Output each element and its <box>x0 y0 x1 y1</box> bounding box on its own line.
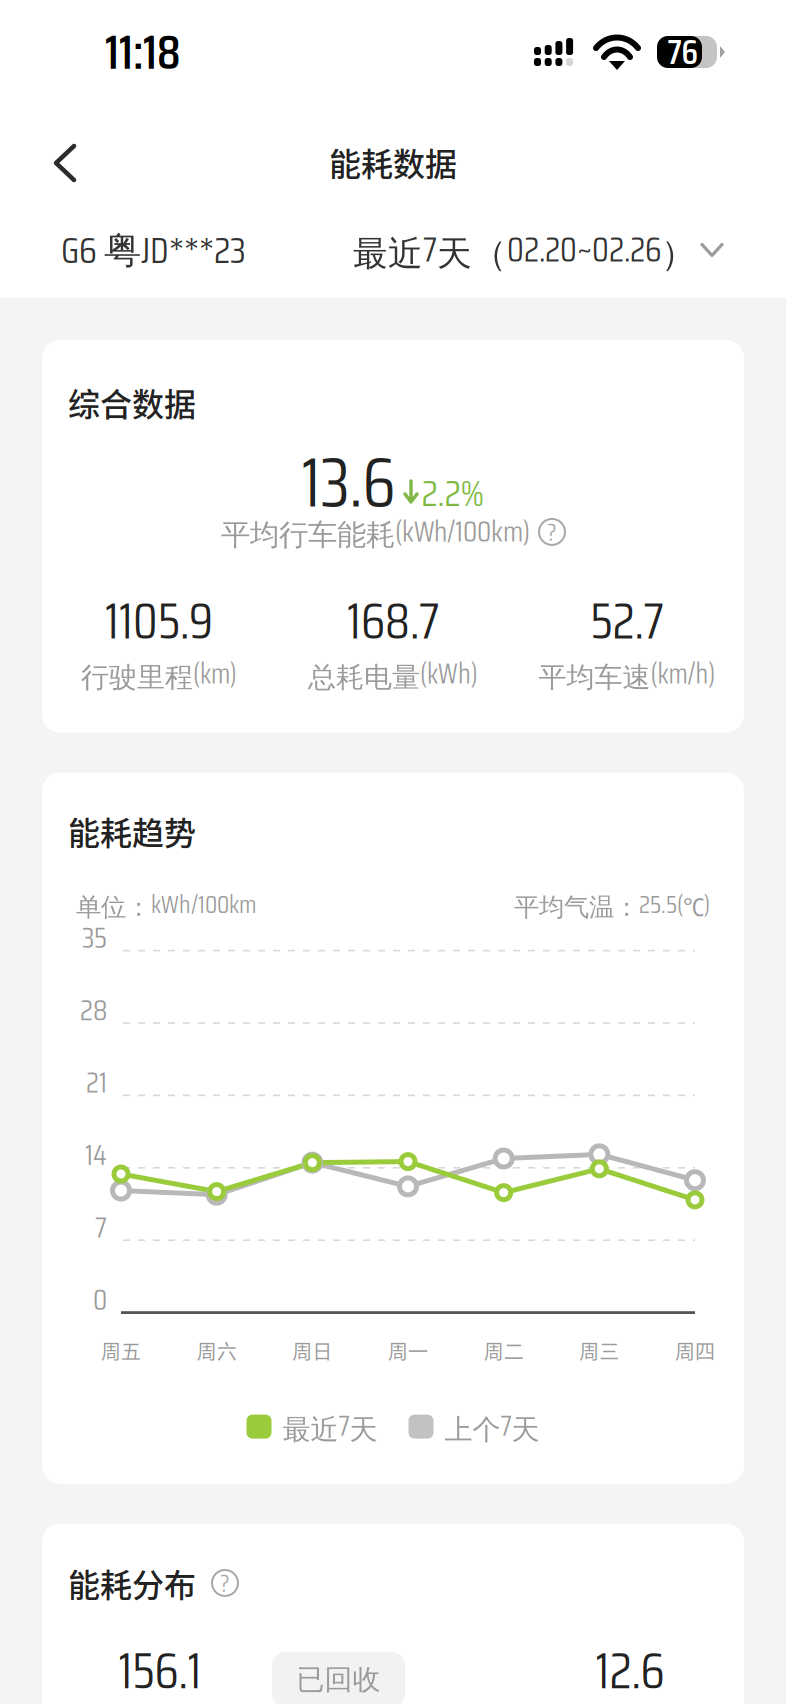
staticText: 7 <box>95 1209 107 1246</box>
staticText: 35 <box>82 919 107 956</box>
staticText: 单位：kWh/100km <box>76 893 257 917</box>
staticText: 上个7天 <box>444 1413 539 1440</box>
staticText: 13.6 <box>301 451 395 514</box>
staticText: 周一 <box>388 1342 428 1360</box>
staticText: 总耗电量(kWh) <box>308 661 478 688</box>
staticText: 周三 <box>579 1342 619 1360</box>
staticText: 21 <box>86 1064 107 1101</box>
staticText: 综合数据 <box>68 388 196 417</box>
button[interactable]: 最近7天（02.20~02.26） <box>353 214 724 286</box>
staticText: 76 <box>667 31 698 72</box>
staticText: 11:18 <box>105 22 181 82</box>
staticText: 已回收 <box>296 1669 380 1690</box>
staticText: ? <box>220 1567 229 1599</box>
staticText: 周四 <box>675 1342 715 1360</box>
staticText: 0 <box>93 1281 107 1318</box>
staticText: 2.2% <box>421 476 484 510</box>
staticText: ? <box>547 516 556 548</box>
staticText: 能耗趋势 <box>68 817 196 845</box>
staticText: 1105.9 <box>105 598 213 644</box>
staticText: 平均气温：25.5(℃) <box>514 893 710 917</box>
staticText: 周六 <box>197 1342 237 1360</box>
staticText: 行驶里程(km) <box>81 661 237 688</box>
staticText: 156.1 <box>118 1648 201 1694</box>
button[interactable]: G6 粤JD***23 <box>61 214 291 286</box>
staticText: 能耗分布 <box>68 1569 196 1597</box>
staticText: 平均行车能耗(kWh/100km) <box>221 518 530 546</box>
staticText: 周日 <box>292 1342 332 1360</box>
staticText: 14 <box>85 1136 107 1173</box>
staticText: 周五 <box>101 1342 141 1360</box>
staticText: 168.7 <box>347 598 439 644</box>
staticText: G6 粤JD***23 <box>61 233 246 267</box>
staticText: 最近7天（02.20~02.26） <box>353 234 696 266</box>
button[interactable]: 返回 <box>43 130 129 196</box>
staticText: 能耗数据 <box>329 148 457 176</box>
staticText: 28 <box>80 991 107 1028</box>
staticText: 52.7 <box>590 598 663 644</box>
staticText: 12.6 <box>595 1648 664 1694</box>
staticText: 周二 <box>484 1342 524 1360</box>
staticText: 平均车速(km/h) <box>538 661 715 688</box>
staticText: 最近7天 <box>282 1413 377 1440</box>
